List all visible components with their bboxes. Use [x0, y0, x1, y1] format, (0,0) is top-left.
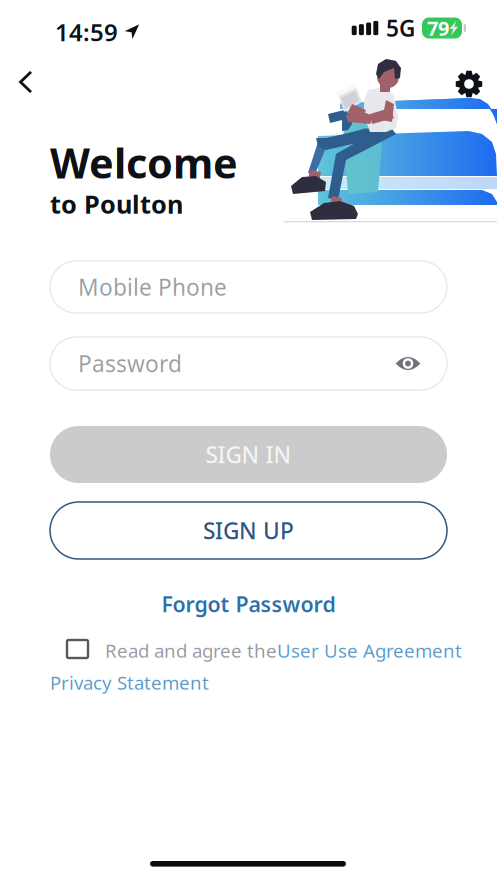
button[interactable]: Show password [395, 355, 421, 371]
button[interactable]: SIGN UP [50, 502, 447, 559]
staticText: Welcome [50, 135, 238, 190]
button[interactable]: Agree to the user agreement [67, 640, 88, 658]
button[interactable]: Back [4, 60, 48, 104]
button[interactable]: Settings [447, 62, 491, 106]
staticText: SIGN UP [203, 515, 294, 545]
staticText: SIGN IN [205, 439, 291, 469]
button[interactable]: Forgot Password [50, 589, 447, 619]
staticText: 5G [386, 13, 415, 43]
button[interactable]: Privacy Statement [50, 670, 209, 695]
staticText: 14:59 [55, 16, 118, 48]
staticText: to Poulton [50, 187, 183, 221]
staticText: Forgot Password [161, 590, 335, 618]
staticText: User Use Agreement [277, 638, 462, 663]
staticText: Mobile Phone [78, 272, 227, 302]
staticText: Read and agree the [105, 638, 277, 663]
button[interactable]: SIGN IN [50, 426, 447, 483]
staticText: Privacy Statement [50, 670, 209, 695]
button[interactable]: User Use Agreement [277, 638, 462, 663]
staticText: Password [78, 348, 182, 378]
staticText: 79 [427, 15, 449, 41]
